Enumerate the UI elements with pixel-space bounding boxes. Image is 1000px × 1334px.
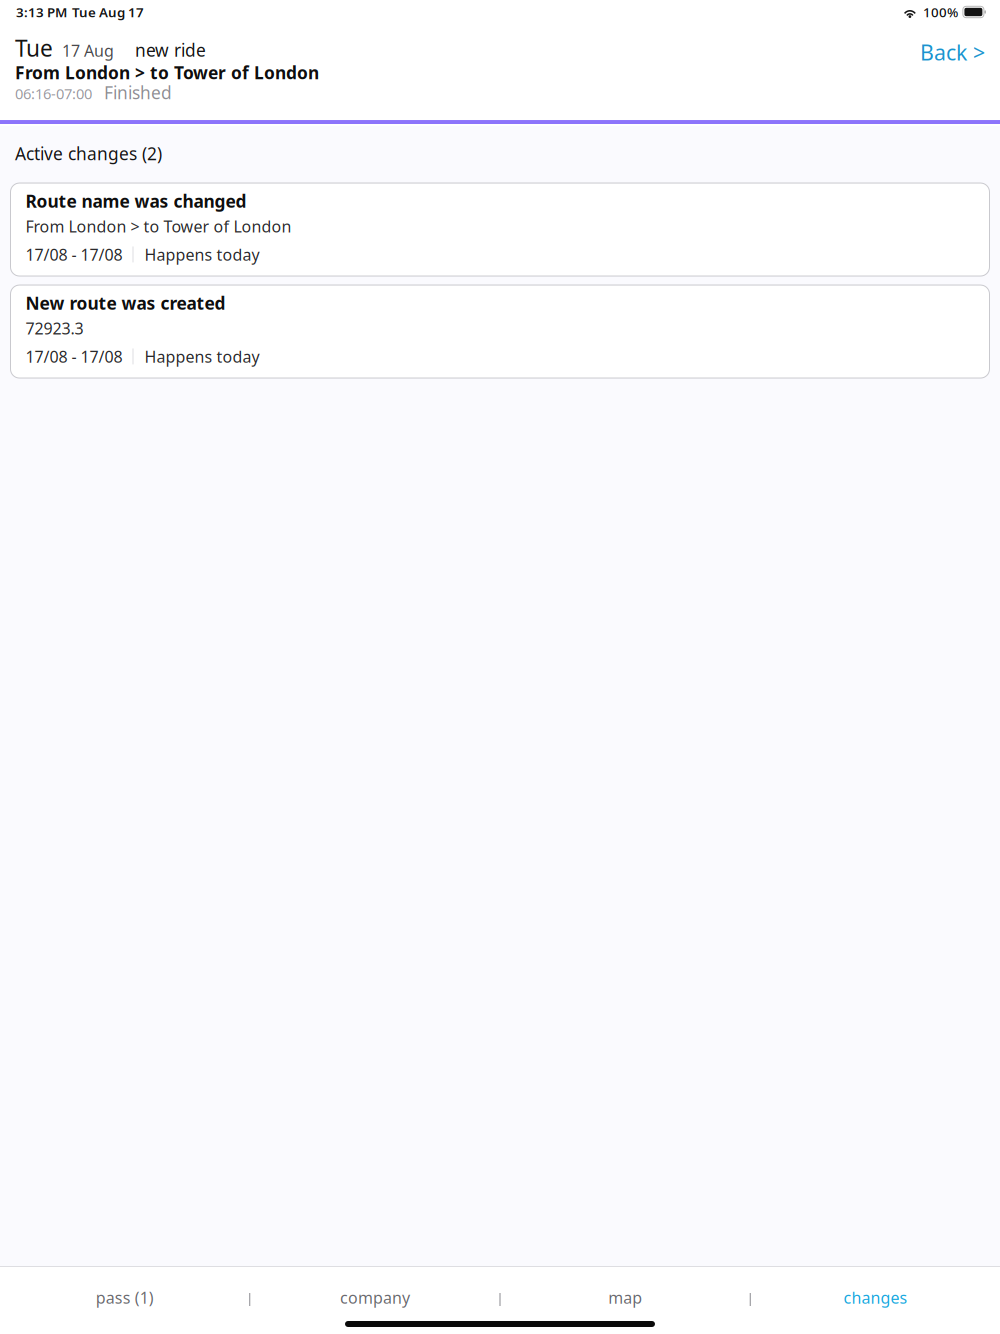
button[interactable]: map [500, 1267, 750, 1314]
button[interactable]: Back > [910, 29, 985, 66]
button[interactable]: changes [751, 1267, 1000, 1314]
staticText: 100% [923, 3, 958, 21]
staticText: Active changes (2) [15, 142, 162, 165]
staticText: 17 Aug [62, 40, 114, 61]
staticText: Happens today [144, 346, 259, 367]
staticText: New route was created [25, 291, 225, 314]
button[interactable]: company [250, 1267, 499, 1314]
staticText: Route name was changed [25, 189, 246, 212]
staticText: Tue [15, 33, 53, 63]
staticText: changes [843, 1287, 907, 1308]
staticText: company [340, 1287, 410, 1308]
staticText: new ride [135, 39, 206, 62]
staticText: 17/08 - 17/08 [25, 346, 122, 367]
staticText: 06:16-07:00 [15, 84, 92, 103]
staticText: map [608, 1287, 642, 1308]
staticText: From London > to Tower of London [15, 61, 319, 84]
staticText: Happens today [144, 244, 259, 265]
button[interactable]: Route name was changed [10, 183, 989, 276]
staticText: 17/08 - 17/08 [25, 244, 122, 265]
button[interactable]: New route was created [10, 285, 989, 378]
staticText: pass (1) [96, 1287, 154, 1308]
staticText: Tue Aug 17 [72, 3, 144, 21]
staticText: 72923.3 [25, 318, 83, 339]
button[interactable]: pass (1) [0, 1267, 249, 1314]
staticText: Finished [104, 81, 172, 104]
staticText: From London > to Tower of London [25, 216, 291, 237]
staticText: 3:13 PM [16, 3, 67, 21]
staticText: Back > [920, 38, 985, 66]
